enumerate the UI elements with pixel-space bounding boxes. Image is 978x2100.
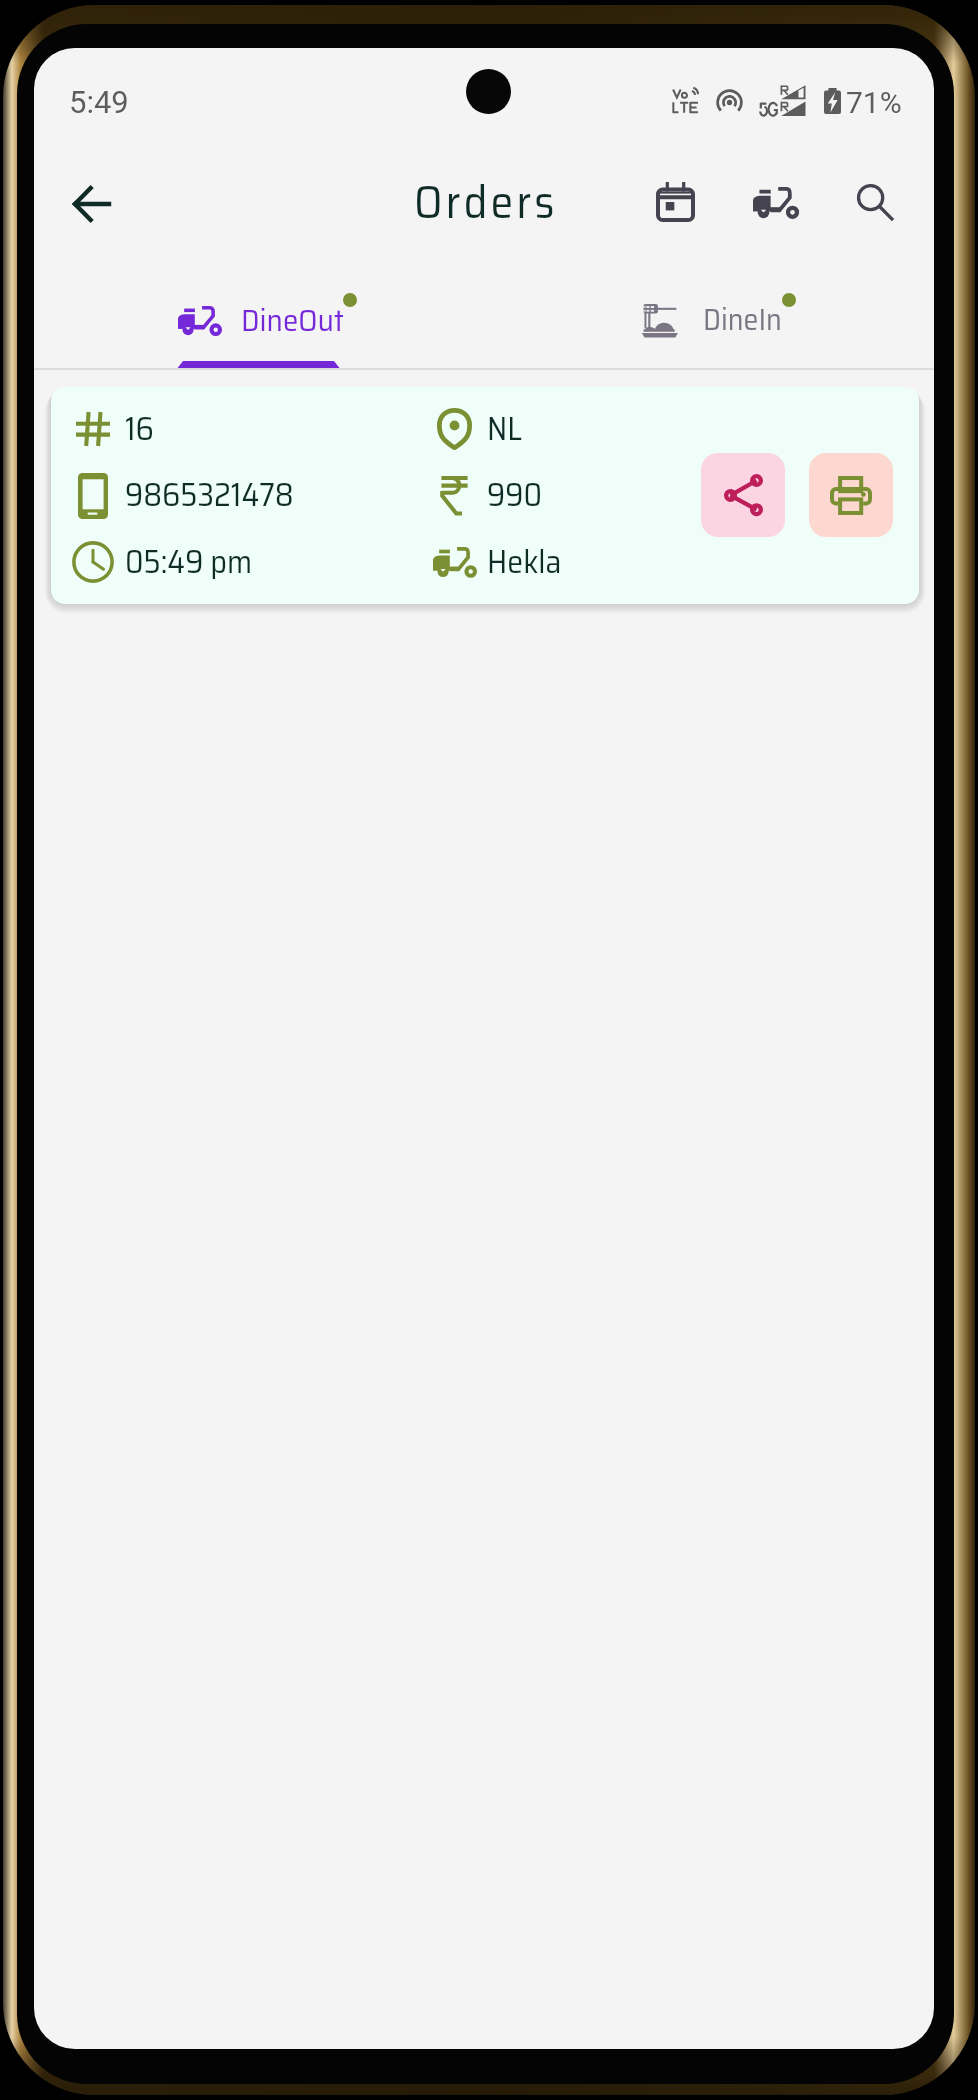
staticText: 9865321478 [125, 470, 294, 520]
staticText: 990 [487, 470, 543, 520]
button[interactable]: Search [838, 165, 912, 239]
button[interactable]: Back [55, 167, 129, 241]
button[interactable]: 16 [51, 387, 919, 604]
staticText: NL [487, 404, 523, 454]
button[interactable]: DineIn [484, 288, 934, 366]
button[interactable]: DineOut [34, 288, 484, 366]
button[interactable]: Share [701, 453, 785, 537]
staticText: Orders [414, 166, 558, 238]
staticText: DineIn [703, 296, 782, 343]
button[interactable]: Print [809, 453, 893, 537]
staticText: 16 [125, 404, 154, 454]
staticText: 5:49 [69, 84, 129, 120]
button[interactable]: Calendar [638, 165, 712, 239]
staticText: 71% [846, 85, 902, 120]
staticText: 05:49 pm [125, 537, 253, 587]
button[interactable]: Delivery orders [738, 165, 812, 239]
staticText: Hekla [487, 537, 562, 587]
staticText: DineOut [241, 296, 344, 345]
